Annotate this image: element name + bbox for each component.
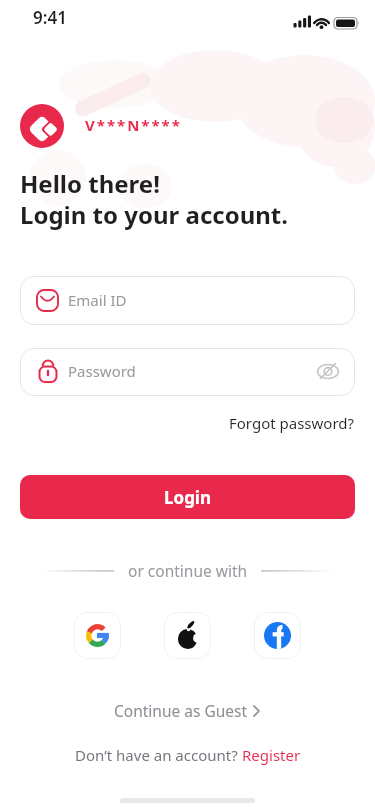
staticText: Login	[164, 486, 212, 509]
staticText: Password	[68, 361, 136, 381]
staticText: Login to your account.	[20, 198, 289, 231]
button[interactable]: Forgot password?	[229, 413, 355, 433]
button[interactable]: Email ID	[20, 276, 355, 325]
staticText: Continue as Guest	[114, 700, 248, 721]
button[interactable]	[254, 612, 301, 659]
button[interactable]: Password	[20, 348, 355, 396]
staticText: Forgot password?	[229, 413, 355, 433]
staticText: Register	[242, 745, 301, 765]
button[interactable]	[74, 612, 121, 659]
button[interactable]: Register	[242, 745, 301, 765]
button[interactable]: Login	[20, 475, 355, 519]
button[interactable]	[164, 612, 211, 659]
staticText: or continue with	[128, 560, 248, 581]
button[interactable]: Continue as Guest	[114, 700, 262, 721]
staticText: 9:41	[33, 6, 67, 29]
staticText: Don’t have an account?	[75, 745, 242, 765]
staticText: V***N****	[85, 115, 182, 135]
staticText: Hello there!	[20, 167, 160, 200]
staticText: Email ID	[68, 290, 127, 310]
